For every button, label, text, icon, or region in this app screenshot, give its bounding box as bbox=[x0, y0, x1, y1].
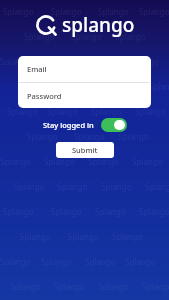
staticText: Splango bbox=[132, 156, 163, 167]
button[interactable]: Stay logged in bbox=[37, 115, 133, 135]
staticText: Splango bbox=[10, 281, 41, 292]
staticText: Splango bbox=[145, 181, 169, 192]
staticText: Splango bbox=[149, 81, 169, 92]
staticText: Splango bbox=[20, 231, 51, 242]
staticText: Splango bbox=[112, 231, 143, 242]
staticText: Splango bbox=[24, 31, 55, 42]
staticText: Splango bbox=[88, 156, 119, 167]
staticText: Submit bbox=[72, 145, 98, 155]
staticText: Splango bbox=[115, 31, 146, 42]
staticText: Splango bbox=[57, 181, 88, 192]
staticText: Splango bbox=[91, 106, 122, 117]
staticText: Splango bbox=[0, 56, 31, 67]
staticText: Splango bbox=[105, 81, 136, 92]
staticText: Splango bbox=[95, 206, 126, 217]
staticText: Splango bbox=[139, 206, 169, 217]
staticText: Splango bbox=[0, 156, 31, 167]
staticText: Splango bbox=[3, 206, 34, 217]
button[interactable]: Submit bbox=[56, 142, 114, 158]
staticText: Splango bbox=[17, 81, 48, 92]
staticText: Splango bbox=[74, 131, 105, 142]
staticText: Splango bbox=[98, 6, 129, 17]
staticText: Splango bbox=[44, 156, 75, 167]
staticText: Splango bbox=[101, 181, 132, 192]
staticText: Splango bbox=[14, 181, 45, 192]
staticText: Splango bbox=[68, 231, 99, 242]
staticText: Splango bbox=[142, 281, 169, 292]
button[interactable]: Email bbox=[18, 56, 151, 82]
staticText: Splango bbox=[0, 256, 31, 267]
staticText: Splango bbox=[85, 256, 116, 267]
staticText: Splango bbox=[47, 106, 78, 117]
staticText: Splango bbox=[128, 56, 159, 67]
staticText: Splango bbox=[118, 131, 149, 142]
staticText: Splango bbox=[125, 256, 156, 267]
staticText: Splango bbox=[71, 31, 102, 42]
button[interactable]: Password bbox=[18, 83, 151, 108]
staticText: Stay logged in bbox=[43, 120, 94, 130]
staticText: Password bbox=[27, 91, 62, 101]
staticText: Splango bbox=[3, 6, 34, 17]
staticText: Splango bbox=[51, 6, 82, 17]
staticText: Splango bbox=[98, 281, 129, 292]
staticText: Email bbox=[27, 64, 47, 74]
staticText: Splango bbox=[7, 106, 38, 117]
staticText: Splango bbox=[51, 206, 82, 217]
staticText: Splango bbox=[61, 81, 92, 92]
staticText: Splango bbox=[139, 6, 169, 17]
staticText: Splango bbox=[135, 106, 166, 117]
other: Stay logged in toggle, on bbox=[101, 118, 127, 132]
staticText: Splango bbox=[27, 131, 58, 142]
staticText: Splango bbox=[54, 281, 85, 292]
staticText: splango bbox=[62, 12, 135, 38]
staticText: Splango bbox=[41, 256, 72, 267]
